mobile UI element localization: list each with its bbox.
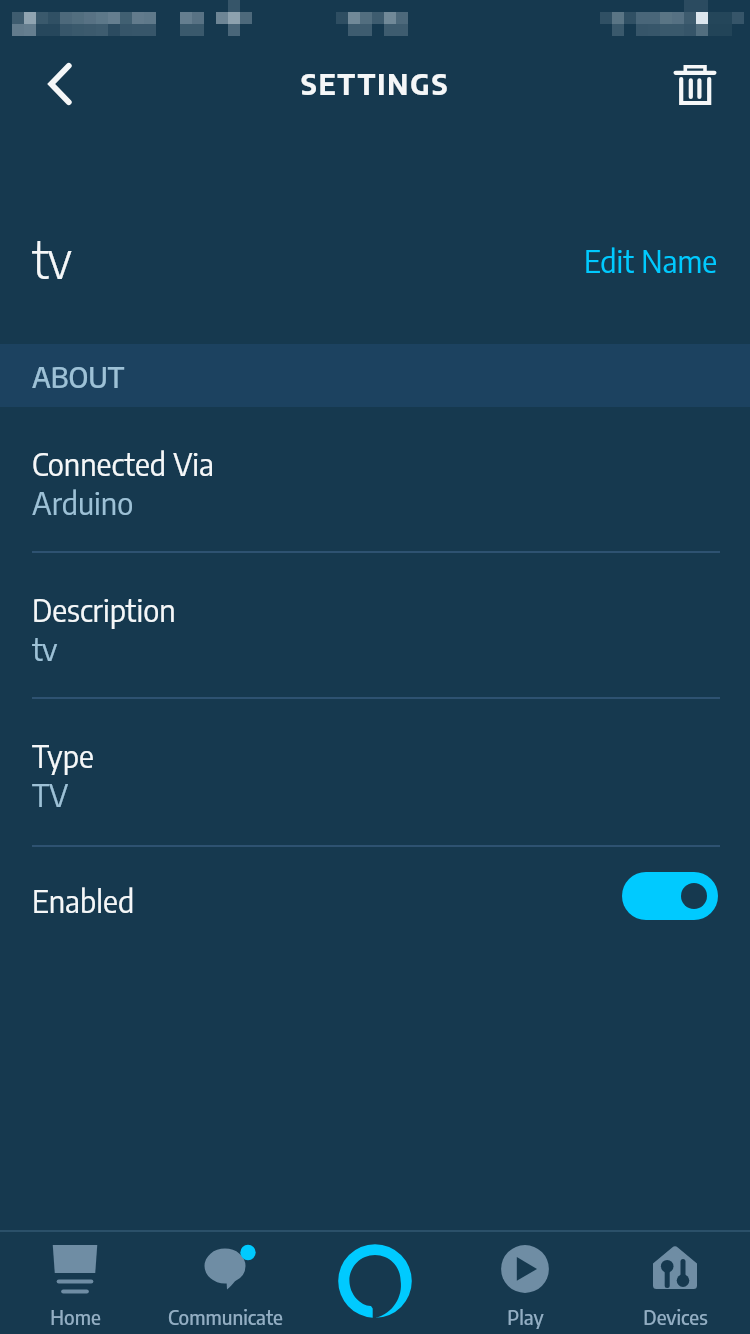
staticText: TV: [32, 775, 69, 814]
staticText: Communicate: [168, 1304, 283, 1329]
staticText: tv: [32, 629, 58, 668]
button[interactable]: Description: [0, 553, 750, 699]
button[interactable]: Communicate: [150, 1230, 300, 1334]
staticText: Connected Via: [32, 444, 214, 483]
staticText: Play: [507, 1304, 544, 1329]
staticText: Arduino: [32, 483, 134, 522]
staticText: Home: [50, 1304, 101, 1329]
button[interactable]: Enabled: [0, 847, 750, 945]
button[interactable]: Home: [0, 1230, 150, 1334]
button[interactable]: Play: [450, 1230, 600, 1334]
button[interactable]: Delete: [653, 43, 737, 127]
button[interactable]: Edit Name: [552, 223, 750, 298]
staticText: Devices: [643, 1304, 708, 1329]
staticText: ABOUT: [32, 358, 125, 394]
staticText: tv: [32, 227, 72, 290]
staticText: Description: [32, 590, 176, 629]
staticText: Enabled: [32, 881, 135, 920]
button[interactable]: Back: [18, 44, 102, 128]
button[interactable]: Type: [0, 699, 750, 847]
staticText: Edit Name: [584, 241, 718, 280]
button[interactable]: Devices: [600, 1230, 750, 1334]
staticText: SETTINGS: [301, 65, 450, 101]
button[interactable]: Connected Via: [0, 407, 750, 553]
button[interactable]: Alexa: [300, 1230, 450, 1334]
staticText: Type: [32, 736, 94, 775]
